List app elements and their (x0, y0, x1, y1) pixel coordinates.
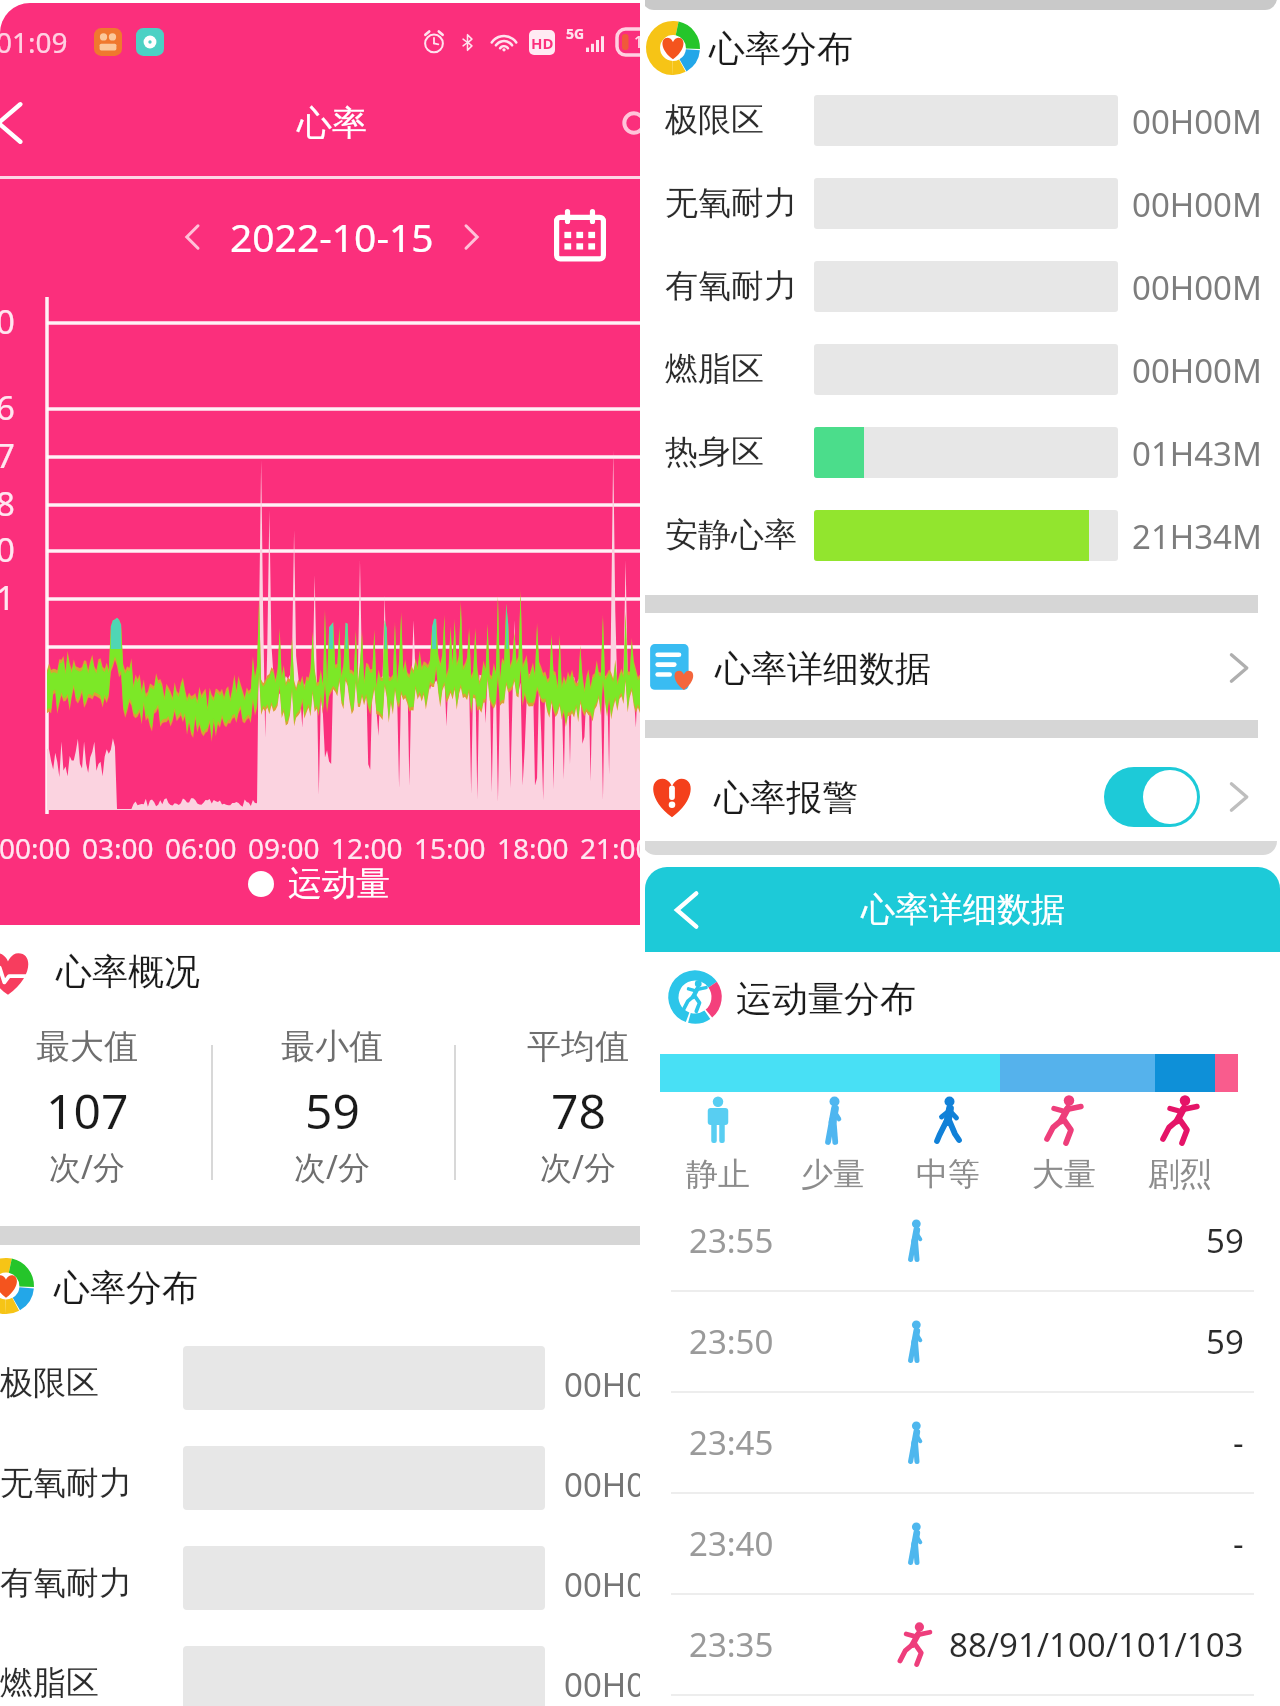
staticText: 燃脂区 (665, 348, 764, 390)
staticText: 少量 (801, 1154, 865, 1194)
staticText: 01:09 (0, 23, 68, 61)
button[interactable]: 最大值 (0, 1025, 197, 1189)
button[interactable]: 中等 (890, 1096, 1006, 1194)
staticText: 23:55 (689, 1218, 774, 1263)
staticText: 7 (0, 433, 15, 478)
staticText: 运动量 (288, 862, 390, 905)
staticText: 无氧耐力 (665, 182, 797, 224)
staticText: 23:35 (689, 1622, 774, 1667)
staticText: 有氧耐力 (0, 1562, 132, 1604)
staticText: 极限区 (0, 1362, 99, 1404)
staticText: 21H34M (1132, 514, 1262, 559)
button[interactable]: 23:45 (645, 1393, 1280, 1492)
staticText: 平均值 (527, 1025, 629, 1068)
staticText: 次/分 (49, 1145, 125, 1189)
staticText: HD (531, 33, 554, 53)
staticText: 00H00M (1132, 348, 1262, 393)
staticText: 2022-10-15 (230, 210, 434, 263)
button[interactable]: 无氧耐力 (0, 1428, 640, 1528)
staticText: 59 (305, 1078, 360, 1143)
button[interactable]: 燃脂区 (0, 1628, 640, 1706)
button[interactable]: 23:50 (645, 1292, 1280, 1391)
staticText: 次/分 (294, 1145, 370, 1189)
staticText: 107 (46, 1078, 129, 1143)
staticText: 有氧耐力 (665, 265, 797, 307)
staticText: 燃脂区 (0, 1662, 99, 1704)
staticText: 23:50 (689, 1319, 774, 1364)
staticText: 最小值 (281, 1025, 383, 1068)
button[interactable]: 最小值 (222, 1025, 442, 1189)
button[interactable]: 剧烈 (1122, 1096, 1238, 1194)
button[interactable]: 有氧耐力 (0, 1528, 640, 1628)
staticText: 安静心率 (665, 514, 797, 556)
staticText: 心率详细数据 (861, 888, 1065, 931)
button[interactable]: 安静心率 (645, 494, 1280, 577)
button[interactable]: More options (612, 101, 640, 145)
button[interactable]: 有氧耐力 (645, 245, 1280, 328)
staticText: 12:00 (331, 829, 403, 867)
button[interactable]: Back (0, 97, 38, 149)
button[interactable]: 极限区 (645, 79, 1280, 162)
staticText: 06:00 (165, 829, 237, 867)
staticText: 6 (0, 385, 15, 430)
staticText: 心率 (297, 101, 367, 145)
button[interactable]: 少量 (775, 1096, 890, 1194)
staticText: 18:00 (497, 829, 569, 867)
button[interactable]: 23:35 (645, 1595, 1280, 1694)
button[interactable]: Next day (450, 217, 490, 257)
staticText: 78 (551, 1078, 606, 1143)
button[interactable]: 心率详细数据 (645, 613, 1280, 723)
staticText: 心率概况 (56, 949, 200, 994)
button[interactable]: 热身区 (645, 411, 1280, 494)
staticText: 剧烈 (1148, 1154, 1212, 1194)
staticText: 00H00M (1132, 99, 1262, 144)
staticText: 00H0 (564, 1362, 640, 1407)
staticText: 59 (1206, 1218, 1244, 1263)
staticText: 心率分布 (709, 26, 853, 71)
staticText: 心率分布 (54, 1265, 198, 1310)
staticText: - (1233, 1521, 1244, 1566)
staticText: 00H0 (564, 1562, 640, 1607)
staticText: 00H0 (564, 1462, 640, 1507)
staticText: 静止 (686, 1154, 750, 1194)
staticText: 88/91/100/101/103 (949, 1622, 1244, 1667)
button[interactable]: 无氧耐力 (645, 162, 1280, 245)
staticText: 最大值 (36, 1025, 138, 1068)
button[interactable]: 静止 (660, 1096, 775, 1194)
button[interactable]: 燃脂区 (645, 328, 1280, 411)
staticText: 00H00M (1132, 182, 1262, 227)
staticText: 21:00 (580, 829, 640, 867)
staticText: 无氧耐力 (0, 1462, 132, 1504)
button[interactable]: 大量 (1006, 1096, 1122, 1194)
staticText: 中等 (916, 1154, 980, 1194)
staticText: 0 (0, 527, 15, 572)
button[interactable]: Back (665, 887, 711, 933)
staticText: 01H43M (1132, 431, 1262, 476)
button[interactable]: 极限区 (0, 1328, 640, 1428)
staticText: 23:40 (689, 1521, 774, 1566)
staticText: 23:45 (689, 1420, 774, 1465)
button[interactable]: Heart rate alarm toggle (1104, 767, 1200, 827)
staticText: 大量 (1032, 1154, 1096, 1194)
staticText: 心率详细数据 (715, 646, 931, 691)
staticText: 00:00 (0, 829, 71, 867)
button[interactable]: 23:55 (645, 1191, 1280, 1290)
staticText: 1 (0, 575, 15, 620)
button[interactable]: 平均值 (468, 1025, 640, 1189)
staticText: 59 (1206, 1319, 1244, 1364)
button[interactable]: 心率报警 (645, 738, 1280, 856)
staticText: 5G (566, 24, 585, 43)
staticText: 次/分 (540, 1145, 616, 1189)
staticText: 00H0 (564, 1662, 640, 1706)
button[interactable]: Previous day (174, 217, 214, 257)
button[interactable]: Pick date (554, 210, 606, 262)
button[interactable]: 23:40 (645, 1494, 1280, 1593)
staticText: 0 (0, 299, 15, 344)
staticText: 00H00M (1132, 265, 1262, 310)
staticText: 心率报警 (714, 775, 858, 820)
staticText: 15:00 (414, 829, 486, 867)
staticText: 14 (634, 31, 640, 53)
staticText: 热身区 (665, 431, 764, 473)
staticText: - (1233, 1420, 1244, 1465)
staticText: 03:00 (82, 829, 154, 867)
